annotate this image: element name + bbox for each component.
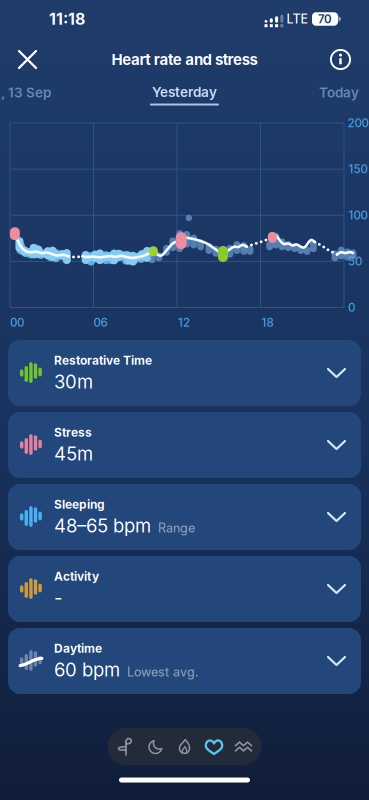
staticText: Yesterday <box>152 84 217 100</box>
button[interactable]: Close <box>18 50 37 69</box>
staticText: 45m <box>54 443 93 465</box>
staticText: LTE <box>286 11 308 26</box>
staticText: Range <box>158 520 195 535</box>
button[interactable]: Sleep <box>146 736 166 756</box>
staticText: Restorative Time <box>54 353 152 367</box>
button[interactable]: Heart rate <box>203 736 225 756</box>
staticText: i, 13 Sep <box>0 84 51 101</box>
staticText: 00 <box>10 315 24 329</box>
staticText: 11:18 <box>49 9 85 29</box>
staticText: - <box>54 587 63 609</box>
staticText: 0 <box>348 300 355 314</box>
staticText: Stress <box>54 425 92 439</box>
button[interactable]: Activity <box>174 736 194 756</box>
button[interactable]: Info <box>330 49 351 70</box>
staticText: Activity <box>54 569 99 583</box>
button[interactable]: Today <box>117 736 137 756</box>
staticText: 150 <box>348 162 367 176</box>
staticText: 60 bpm <box>54 659 120 681</box>
staticText: 70 <box>318 12 332 26</box>
button[interactable]: Activity <box>8 556 361 622</box>
staticText: 48–65 bpm <box>54 515 151 537</box>
button[interactable]: Stress <box>8 412 361 478</box>
button[interactable]: Sleeping <box>8 484 361 550</box>
staticText: 200 <box>347 116 368 130</box>
staticText: 12 <box>178 315 190 329</box>
staticText: Today <box>319 84 359 101</box>
button[interactable]: Restorative Time <box>8 340 361 406</box>
staticText: Daytime <box>54 641 102 655</box>
staticText: 18 <box>261 315 273 329</box>
staticText: Heart rate and stress <box>111 50 257 68</box>
staticText: Lowest avg. <box>127 664 199 679</box>
button[interactable]: Today <box>319 84 359 101</box>
staticText: 06 <box>93 315 107 329</box>
button[interactable]: Resilience <box>233 736 253 756</box>
staticText: 50 <box>348 254 362 268</box>
staticText: Sleeping <box>54 497 105 511</box>
staticText: 30m <box>54 371 93 393</box>
button[interactable]: Daytime <box>8 628 361 694</box>
staticText: 100 <box>348 208 367 222</box>
button[interactable]: Yesterday <box>144 81 224 108</box>
